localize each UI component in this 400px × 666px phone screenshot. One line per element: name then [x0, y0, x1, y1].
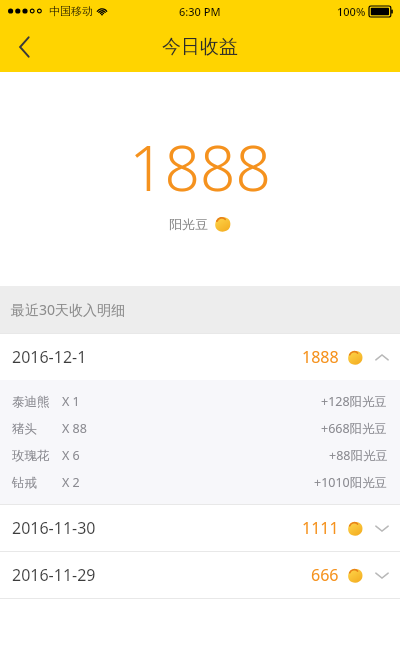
staticText: +1010阳光豆	[314, 474, 388, 491]
staticText: 2016-11-29	[12, 564, 96, 586]
button[interactable]: Back	[0, 22, 48, 72]
staticText: +668阳光豆	[321, 420, 388, 437]
staticText: X 88	[62, 420, 87, 437]
staticText: 泰迪熊	[12, 394, 50, 410]
staticText: 1888	[129, 125, 271, 209]
staticText: 钻戒	[12, 475, 37, 491]
staticText: 6:30 PM	[179, 4, 221, 19]
staticText: 中国移动	[49, 4, 93, 18]
button[interactable]: 2016-11-29	[0, 552, 400, 598]
staticText: X 1	[62, 393, 80, 410]
staticText: 阳光豆	[169, 216, 208, 232]
staticText: 1111	[302, 517, 339, 539]
staticText: 玫瑰花	[12, 448, 50, 464]
staticText: X 2	[62, 474, 80, 491]
staticText: +88阳光豆	[329, 447, 388, 464]
button[interactable]: 2016-11-30	[0, 505, 400, 551]
staticText: 猪头	[12, 421, 37, 437]
button[interactable]: 2016-12-1	[0, 334, 400, 380]
staticText: X 6	[62, 447, 80, 464]
staticText: 1888	[302, 346, 339, 368]
staticText: 2016-12-1	[12, 346, 87, 368]
staticText: 2016-11-30	[12, 517, 96, 539]
staticText: 今日收益	[162, 35, 238, 59]
staticText: 100%	[337, 4, 366, 19]
staticText: 666	[311, 564, 339, 586]
staticText: +128阳光豆	[321, 393, 388, 410]
staticText: 最近30天收入明细	[11, 300, 126, 319]
